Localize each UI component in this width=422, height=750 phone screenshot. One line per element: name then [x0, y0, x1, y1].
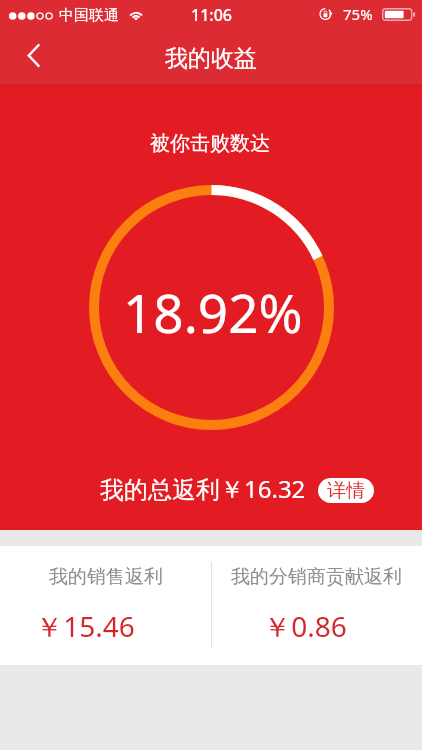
staticText: 18.92% [123, 276, 303, 348]
staticText: 75% [343, 4, 373, 24]
button[interactable]: 我的销售返利 [0, 546, 211, 665]
button[interactable]: 我的分销商贡献返利 [211, 546, 422, 665]
button[interactable]: 详情 [318, 478, 374, 503]
staticText: 我的收益 [165, 44, 257, 73]
staticText: 我的分销商贡献返利 [231, 565, 402, 589]
staticText: 我的总返利￥16.32 [100, 472, 306, 505]
staticText: ￥15.46 [35, 607, 135, 645]
staticText: 11:06 [191, 4, 232, 26]
staticText: 被你击败数达 [150, 131, 270, 156]
staticText: 详情 [327, 479, 365, 503]
staticText: 我的销售返利 [49, 565, 163, 589]
button[interactable]: Back [7, 29, 59, 81]
staticText: 中国联通 [59, 6, 119, 25]
staticText: ￥0.86 [263, 607, 347, 645]
